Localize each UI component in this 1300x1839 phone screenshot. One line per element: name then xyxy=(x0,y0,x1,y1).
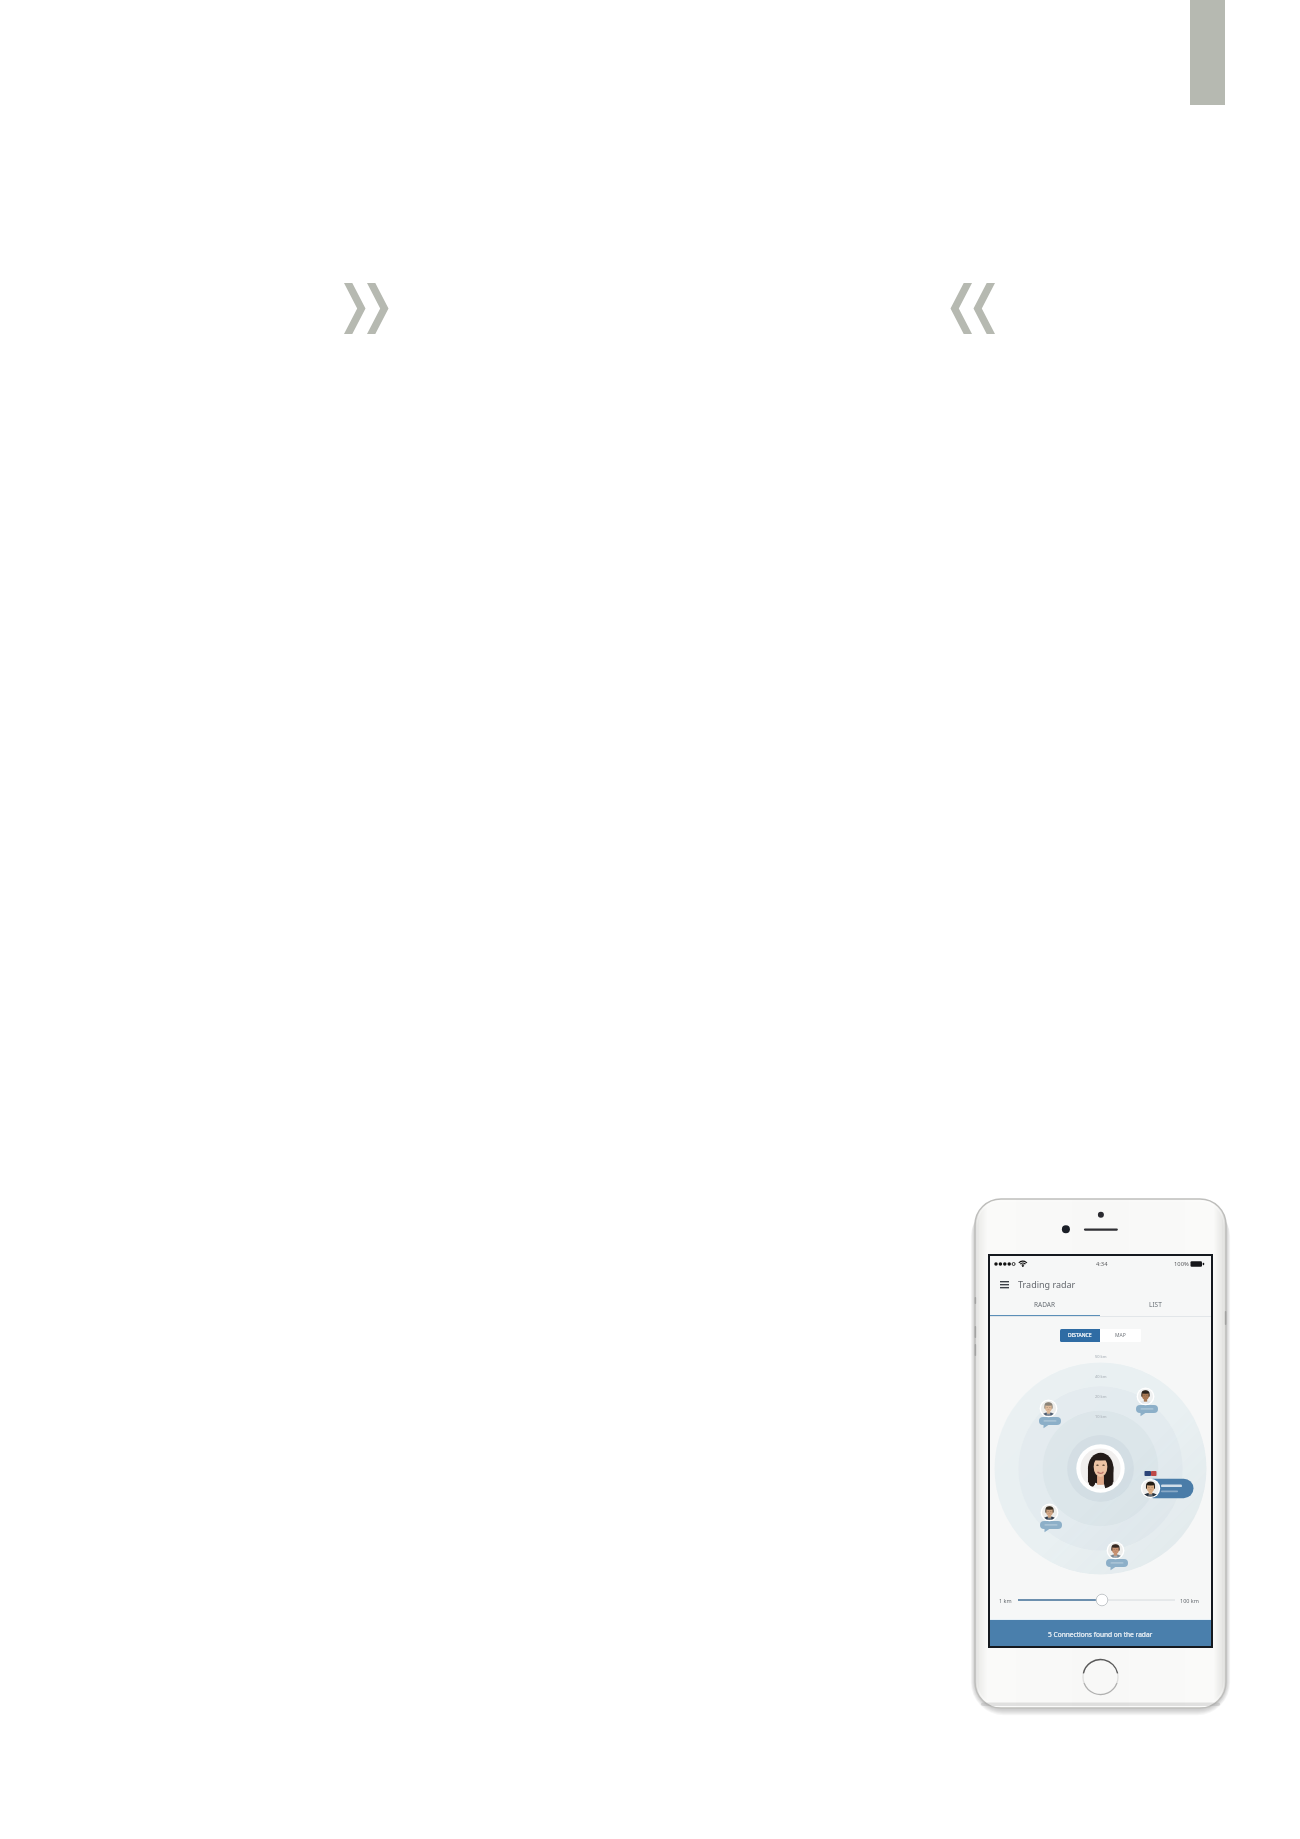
button[interactable]: LIST xyxy=(1100,1296,1211,1316)
staticText: 50 km xyxy=(1095,1354,1107,1359)
button[interactable]: Your profile xyxy=(1076,1443,1126,1493)
staticText: 5 Connections found on the radar xyxy=(1048,1630,1153,1639)
button[interactable]: MAP xyxy=(1100,1329,1141,1342)
staticText: RADAR xyxy=(1034,1300,1056,1309)
button[interactable]: John Smith, 20 km away xyxy=(1040,1390,1066,1420)
button[interactable]: RADAR xyxy=(990,1296,1100,1316)
button[interactable]: DISTANCE xyxy=(1060,1329,1100,1342)
button[interactable]: Distance range slider xyxy=(1018,1593,1175,1607)
button[interactable]: Ana Diaz, 28 km away xyxy=(1041,1494,1067,1524)
staticText: 100 km xyxy=(1180,1597,1199,1604)
button[interactable]: Open navigation menu xyxy=(995,1275,1013,1293)
staticText: 40 km xyxy=(1095,1374,1107,1379)
staticText: Trading radar xyxy=(1018,1278,1076,1290)
staticText: 10 km xyxy=(1095,1414,1107,1419)
staticText: 1 km xyxy=(999,1597,1012,1604)
staticText: LIST xyxy=(1149,1300,1162,1309)
button[interactable]: 5 Connections found on the radar xyxy=(990,1620,1211,1646)
button[interactable]: Paul Ray, 48 km away xyxy=(1107,1532,1133,1562)
staticText: 20 km xyxy=(1095,1394,1107,1399)
staticText: DISTANCE xyxy=(1068,1332,1092,1339)
staticText: 4:34 xyxy=(1096,1260,1108,1268)
staticText: 100% xyxy=(1174,1260,1189,1268)
staticText: MAP xyxy=(1115,1332,1126,1339)
button[interactable]: Mike Ross, 35 km away xyxy=(1137,1378,1163,1408)
button[interactable]: Jane Smith, selected connection xyxy=(1131,1459,1185,1483)
